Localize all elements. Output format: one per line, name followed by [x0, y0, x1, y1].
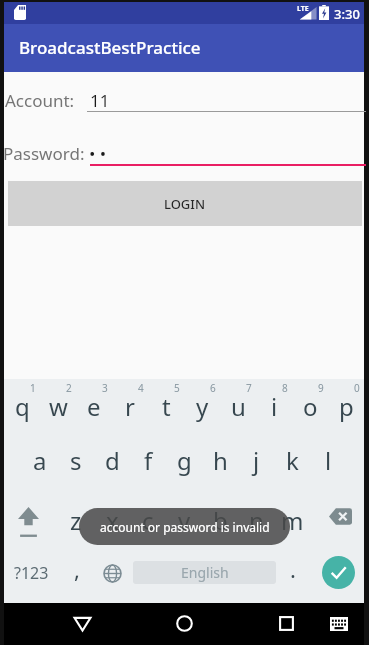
staticText: Account: [5, 89, 75, 112]
button[interactable]: 4 [112, 379, 148, 435]
button[interactable]: 8 [256, 379, 292, 435]
button[interactable]: Home [162, 603, 207, 644]
staticText: 3:30 [334, 5, 360, 23]
staticText: d [105, 444, 120, 477]
button[interactable]: c [130, 491, 166, 547]
staticText: 8 [282, 381, 288, 395]
button[interactable]: k [274, 435, 310, 491]
button[interactable]: English [133, 561, 276, 584]
staticText: 11 [90, 89, 110, 112]
button[interactable]: 0 [328, 379, 364, 435]
button[interactable]: s [58, 435, 94, 491]
button[interactable]: n [238, 491, 274, 547]
button[interactable]: Enter [322, 556, 355, 589]
staticText: 2 [66, 381, 72, 395]
button[interactable]: 3 [76, 379, 112, 435]
button[interactable]: f [130, 435, 166, 491]
staticText: a [33, 444, 47, 477]
staticText: v [178, 504, 191, 537]
button[interactable]: b [202, 491, 238, 547]
button[interactable]: , [58, 552, 95, 594]
button[interactable]: 2 [40, 379, 76, 435]
staticText: s [70, 444, 82, 477]
staticText: l [325, 444, 332, 477]
button[interactable]: v [166, 491, 202, 547]
staticText: w [49, 390, 68, 423]
staticText: 9 [318, 381, 324, 395]
staticText: ?123 [14, 562, 49, 584]
staticText: u [231, 390, 246, 423]
staticText: k [286, 444, 299, 477]
staticText: o [303, 390, 318, 423]
staticText: 4 [138, 381, 144, 395]
button[interactable]: h [202, 435, 238, 491]
button[interactable]: 6 [184, 379, 220, 435]
button[interactable]: a [22, 435, 58, 491]
button[interactable]: LOGIN [8, 181, 362, 226]
staticText: m [281, 504, 304, 537]
staticText: 6 [210, 381, 216, 395]
button[interactable]: g [166, 435, 202, 491]
button[interactable]: d [94, 435, 130, 491]
staticText: account or password is invalid [100, 519, 270, 535]
staticText: 5 [174, 381, 180, 395]
staticText: j [253, 444, 260, 477]
button[interactable]: l [310, 435, 346, 491]
staticText: e [87, 390, 101, 423]
staticText: Password: [3, 142, 85, 165]
staticText: y [196, 390, 209, 423]
staticText: z [70, 504, 82, 537]
staticText: English [181, 563, 229, 582]
button[interactable]: ?123 [8, 552, 55, 594]
staticText: • • [89, 142, 107, 165]
staticText: 3 [102, 381, 108, 395]
button[interactable]: Change language [96, 552, 129, 594]
staticText: c [142, 504, 154, 537]
button[interactable]: Switch keyboard [318, 603, 359, 644]
button[interactable]: Backspace [310, 491, 364, 547]
staticText: x [106, 504, 119, 537]
button[interactable]: 5 [148, 379, 184, 435]
button[interactable]: Recents [264, 603, 309, 644]
button[interactable]: Back [60, 603, 105, 644]
staticText: n [249, 504, 264, 537]
button[interactable]: 7 [220, 379, 256, 435]
button[interactable]: 1 [4, 379, 40, 435]
button[interactable]: 9 [292, 379, 328, 435]
button[interactable]: Shift [4, 491, 58, 547]
staticText: LTE [297, 4, 309, 14]
staticText: g [177, 444, 192, 477]
staticText: , [74, 554, 80, 584]
button[interactable]: j [238, 435, 274, 491]
button[interactable]: x [94, 491, 130, 547]
staticText: 7 [246, 381, 252, 395]
button[interactable]: z [58, 491, 94, 547]
staticText: . [290, 554, 296, 584]
staticText: i [271, 390, 278, 423]
staticText: r [125, 390, 135, 423]
staticText: 1 [30, 381, 36, 395]
button[interactable]: . [276, 552, 309, 594]
button[interactable]: m [274, 491, 310, 547]
staticText: f [144, 444, 153, 477]
staticText: p [339, 390, 354, 423]
staticText: BroadcastBestPractice [19, 36, 201, 59]
staticText: h [213, 444, 228, 477]
staticText: LOGIN [164, 195, 206, 213]
staticText: b [213, 504, 228, 537]
staticText: t [162, 390, 171, 423]
staticText: 0 [354, 381, 360, 395]
staticText: q [15, 390, 30, 423]
